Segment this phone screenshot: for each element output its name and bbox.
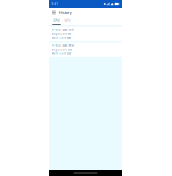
staticText: 9:41 bbox=[52, 2, 59, 5]
button[interactable]: CPU bbox=[51, 17, 62, 25]
staticText: History bbox=[59, 10, 72, 15]
staticText: Single Core 1014 bbox=[52, 48, 72, 51]
staticText: Multi Core 3088 bbox=[52, 36, 71, 39]
button[interactable]: Fri 8 Jul 2024, 08:50 bbox=[49, 42, 122, 57]
staticText: CPU bbox=[53, 19, 59, 22]
staticText: GPU bbox=[64, 19, 70, 22]
staticText: Fri 8 Jul 2024, 09:41 bbox=[52, 28, 74, 31]
button[interactable]: Fri 8 Jul 2024, 09:41 bbox=[49, 27, 122, 41]
staticText: Fri 8 Jul 2024, 08:50 bbox=[52, 44, 74, 47]
staticText: Single Core 999 bbox=[52, 32, 71, 35]
staticText: Multi Core 3124 bbox=[52, 52, 71, 55]
button[interactable]: GPU bbox=[62, 17, 73, 25]
button[interactable]: Menu bbox=[52, 11, 56, 14]
